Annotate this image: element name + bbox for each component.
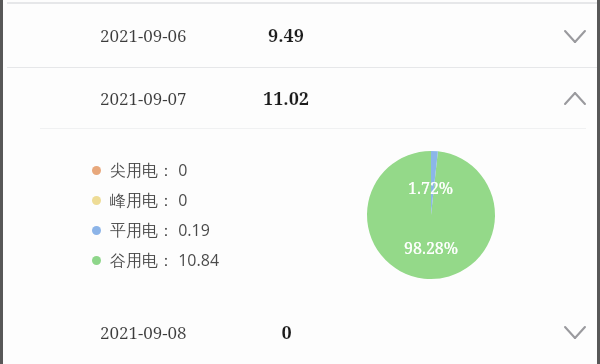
button[interactable]: 平用电： 0.19 bbox=[92, 215, 210, 245]
button[interactable]: 谷用电： 10.84 bbox=[92, 245, 220, 275]
staticText: 1.72% bbox=[408, 177, 454, 199]
staticText: 峰用电： 0 bbox=[110, 189, 188, 211]
button[interactable]: 2021-09-06 bbox=[0, 4, 600, 67]
staticText: 2021-09-06 bbox=[100, 24, 187, 47]
staticText: 9.49 bbox=[268, 23, 304, 48]
staticText: 平用电： 0.19 bbox=[110, 219, 210, 241]
staticText: 尖用电： 0 bbox=[110, 159, 188, 181]
button[interactable]: Expand 2021-09-08 bbox=[553, 310, 597, 354]
staticText: 2021-09-07 bbox=[100, 87, 187, 110]
staticText: 2021-09-08 bbox=[100, 321, 187, 344]
staticText: 谷用电： 10.84 bbox=[110, 249, 220, 271]
button[interactable]: 尖用电： 0 bbox=[92, 155, 188, 185]
button[interactable]: 2021-09-07 bbox=[0, 68, 600, 128]
staticText: 11.02 bbox=[263, 86, 309, 111]
staticText: 98.28% bbox=[404, 237, 459, 259]
button[interactable]: 2021-09-08 bbox=[0, 300, 600, 364]
button[interactable]: Expand 2021-09-06 bbox=[553, 14, 597, 58]
button[interactable]: 峰用电： 0 bbox=[92, 185, 188, 215]
staticText: 0 bbox=[281, 320, 292, 345]
button[interactable]: Collapse 2021-09-07 bbox=[553, 76, 597, 120]
